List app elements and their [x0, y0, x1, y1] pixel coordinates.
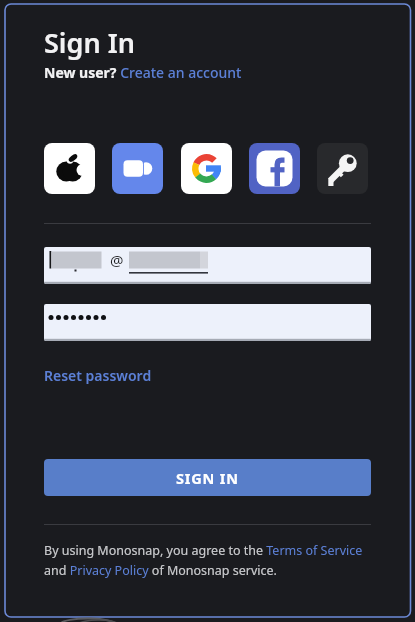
- button[interactable]: [112, 143, 163, 194]
- button[interactable]: SIGN IN: [44, 459, 371, 496]
- button[interactable]: [181, 143, 232, 194]
- button[interactable]: [317, 143, 368, 194]
- button[interactable]: [249, 143, 300, 194]
- staticText: Sign In: [44, 24, 135, 61]
- button[interactable]: New user? Create an account: [44, 63, 242, 82]
- button[interactable]: [44, 304, 371, 341]
- button[interactable]: Reset password: [44, 366, 152, 385]
- staticText: SIGN IN: [176, 468, 239, 488]
- staticText: @: [110, 250, 124, 270]
- staticText: By using Monosnap, you agree to the Term…: [44, 542, 363, 579]
- button[interactable]: @: [44, 247, 371, 284]
- button[interactable]: [44, 143, 95, 194]
